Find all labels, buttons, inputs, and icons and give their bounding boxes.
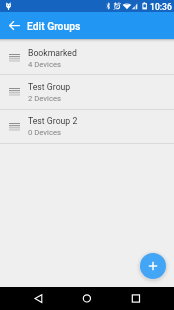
button[interactable]: Home bbox=[76, 287, 174, 310]
staticText: Edit Groups bbox=[27, 20, 81, 32]
staticText: 0 Devices bbox=[28, 128, 61, 137]
other: Reorder bbox=[9, 123, 20, 131]
button[interactable]: Add group bbox=[140, 253, 166, 279]
button[interactable]: Reorder bbox=[0, 75, 174, 110]
staticText: Test Group 2 bbox=[28, 116, 78, 126]
staticText: 10:36 bbox=[150, 2, 172, 12]
staticText: 4 Devices bbox=[28, 60, 61, 69]
staticText: Bookmarked bbox=[28, 48, 77, 58]
staticText: 2 Devices bbox=[28, 94, 61, 103]
button[interactable]: Navigate up bbox=[4, 12, 24, 39]
button[interactable]: Reorder bbox=[0, 42, 174, 75]
other: Reorder bbox=[9, 88, 20, 96]
other: Reorder bbox=[9, 54, 20, 62]
staticText: Test Group bbox=[28, 82, 71, 92]
button[interactable]: Recent apps bbox=[125, 287, 174, 310]
button[interactable]: Reorder bbox=[0, 110, 174, 144]
button[interactable]: Back bbox=[28, 287, 174, 310]
